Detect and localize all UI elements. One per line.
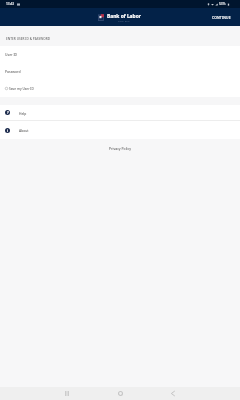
- button[interactable]: Recent apps: [60, 387, 73, 400]
- staticText: 13:43: [6, 2, 15, 6]
- staticText: About: [19, 128, 29, 132]
- staticText: ?: [7, 110, 9, 115]
- staticText: CONTINUE: [212, 15, 231, 20]
- button[interactable]: ?: [0, 105, 240, 120]
- staticText: Help: [19, 111, 27, 115]
- staticText: 53%: [219, 2, 226, 6]
- button[interactable]: Save my User ID: [0, 80, 240, 97]
- staticText: User ID: [5, 52, 18, 57]
- staticText: UNION BANK: [118, 20, 130, 22]
- staticText: Bank of Labor: [107, 13, 141, 20]
- staticText: Save my User ID: [9, 87, 34, 91]
- staticText: i: [7, 128, 9, 133]
- button[interactable]: Password: [0, 63, 240, 80]
- button[interactable]: CONTINUE: [203, 10, 240, 25]
- staticText: Password: [5, 69, 21, 74]
- button[interactable]: User ID: [0, 46, 240, 63]
- button[interactable]: Privacy Policy: [109, 146, 131, 151]
- button[interactable]: Home: [114, 387, 127, 400]
- button[interactable]: i: [0, 121, 240, 139]
- button[interactable]: Back: [166, 387, 179, 400]
- staticText: ENTER USER ID & PASSWORD: [6, 37, 50, 41]
- staticText: Privacy Policy: [109, 146, 131, 151]
